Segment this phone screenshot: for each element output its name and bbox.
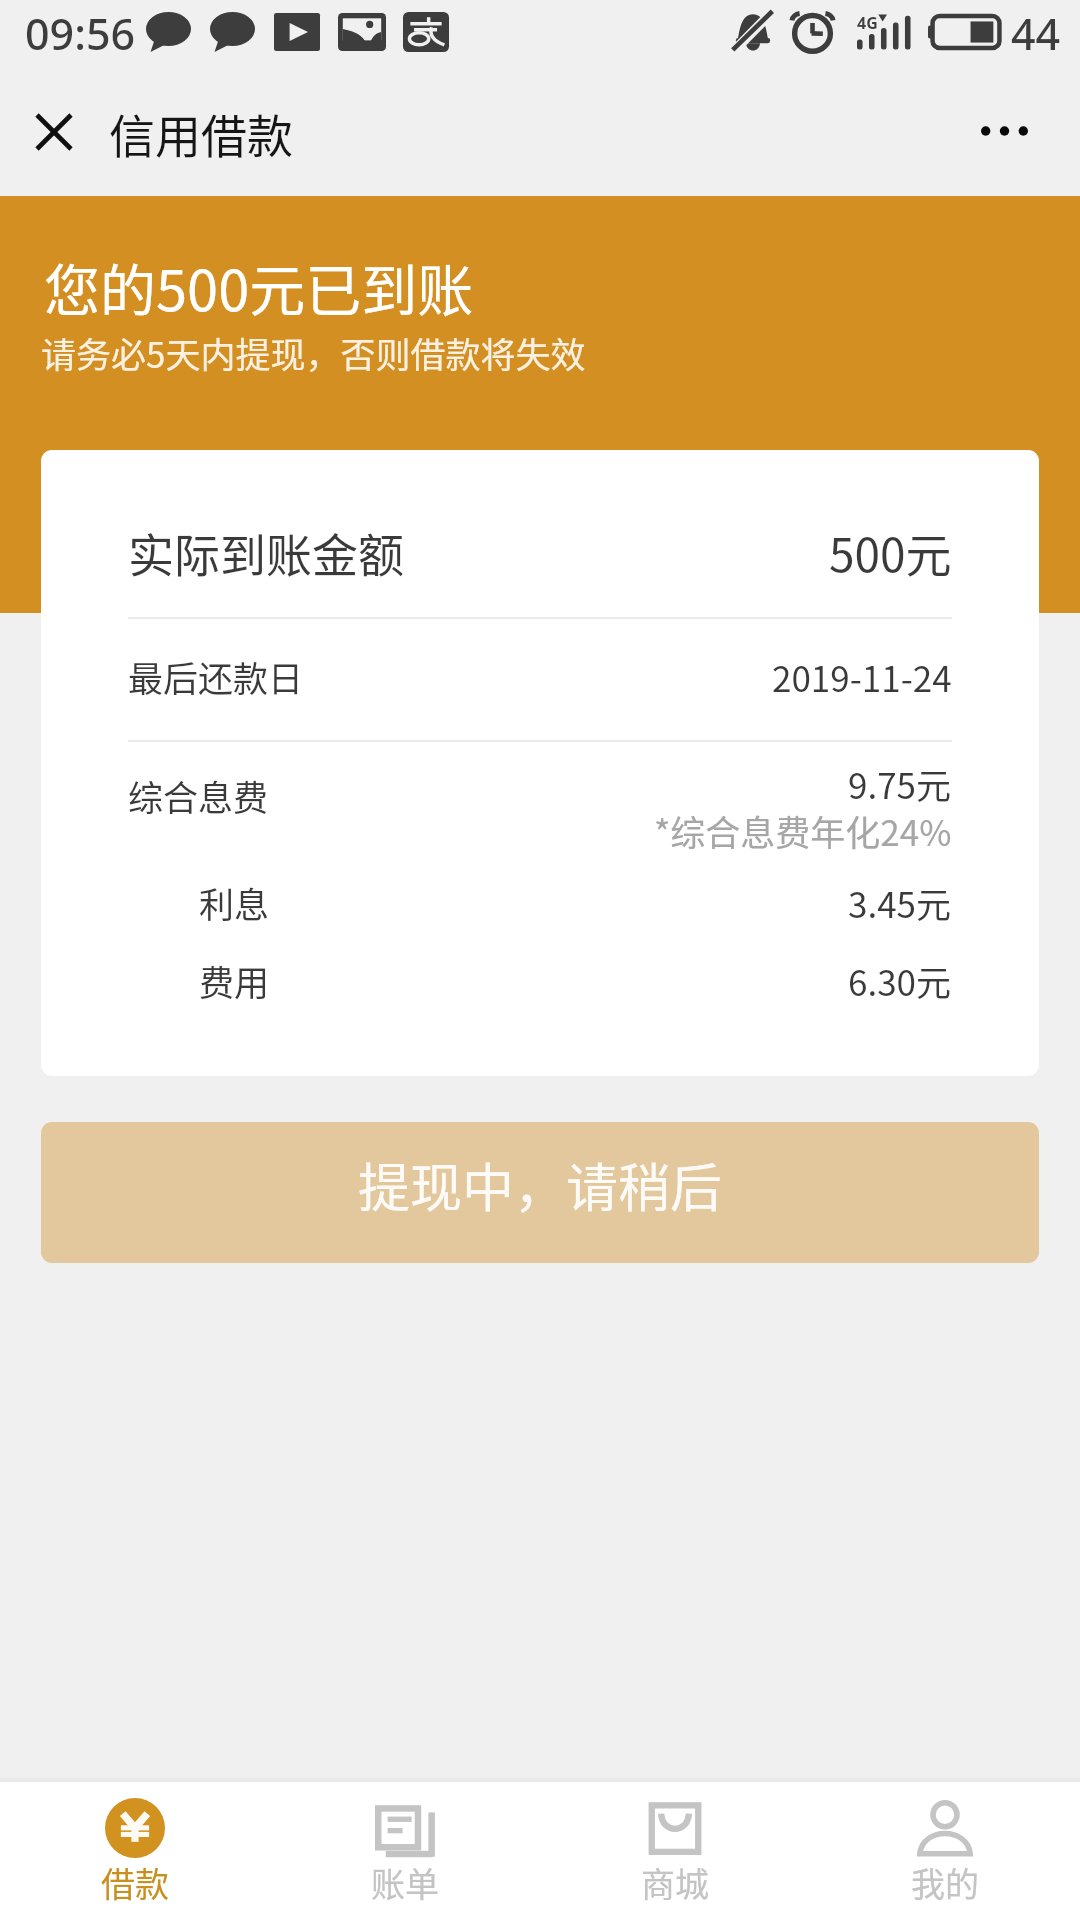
staticText: 实际到账金额 [128, 519, 404, 586]
staticText: 2019-11-24 [772, 651, 952, 702]
staticText: 请务必5天内提现，否则借款将失效 [41, 327, 586, 378]
staticText: 最后还款日 [128, 651, 304, 702]
staticText: 500元 [829, 519, 952, 586]
staticText: 商城 [641, 1858, 709, 1907]
button[interactable]: 借款 [0, 1782, 270, 1920]
staticText: 44 [1011, 4, 1061, 62]
staticText: 9.75元 [848, 758, 952, 809]
staticText: 6.30元 [848, 955, 952, 1006]
staticText: 账单 [371, 1858, 439, 1907]
button[interactable]: 提现中，请稍后 [41, 1122, 1039, 1263]
button[interactable]: 商城 [540, 1782, 810, 1920]
staticText: 提现中，请稍后 [358, 1147, 723, 1222]
button[interactable]: 我的 [810, 1782, 1080, 1920]
staticText: 3.45元 [848, 877, 952, 928]
button[interactable]: Close [0, 72, 111, 196]
staticText: *综合息费年化24% [654, 805, 952, 856]
staticText: 4G [857, 12, 878, 34]
staticText: 信用借款 [109, 100, 293, 167]
staticText: 综合息费 [128, 770, 269, 821]
staticText: 我的 [911, 1858, 979, 1907]
staticText: 借款 [101, 1858, 169, 1907]
button[interactable]: 账单 [270, 1782, 540, 1920]
staticText: 利息 [199, 877, 270, 928]
button[interactable]: More options [955, 72, 1080, 196]
staticText: 09:56 [25, 4, 136, 62]
staticText: 您的500元已到账 [44, 246, 474, 327]
staticText: 费用 [199, 955, 270, 1006]
